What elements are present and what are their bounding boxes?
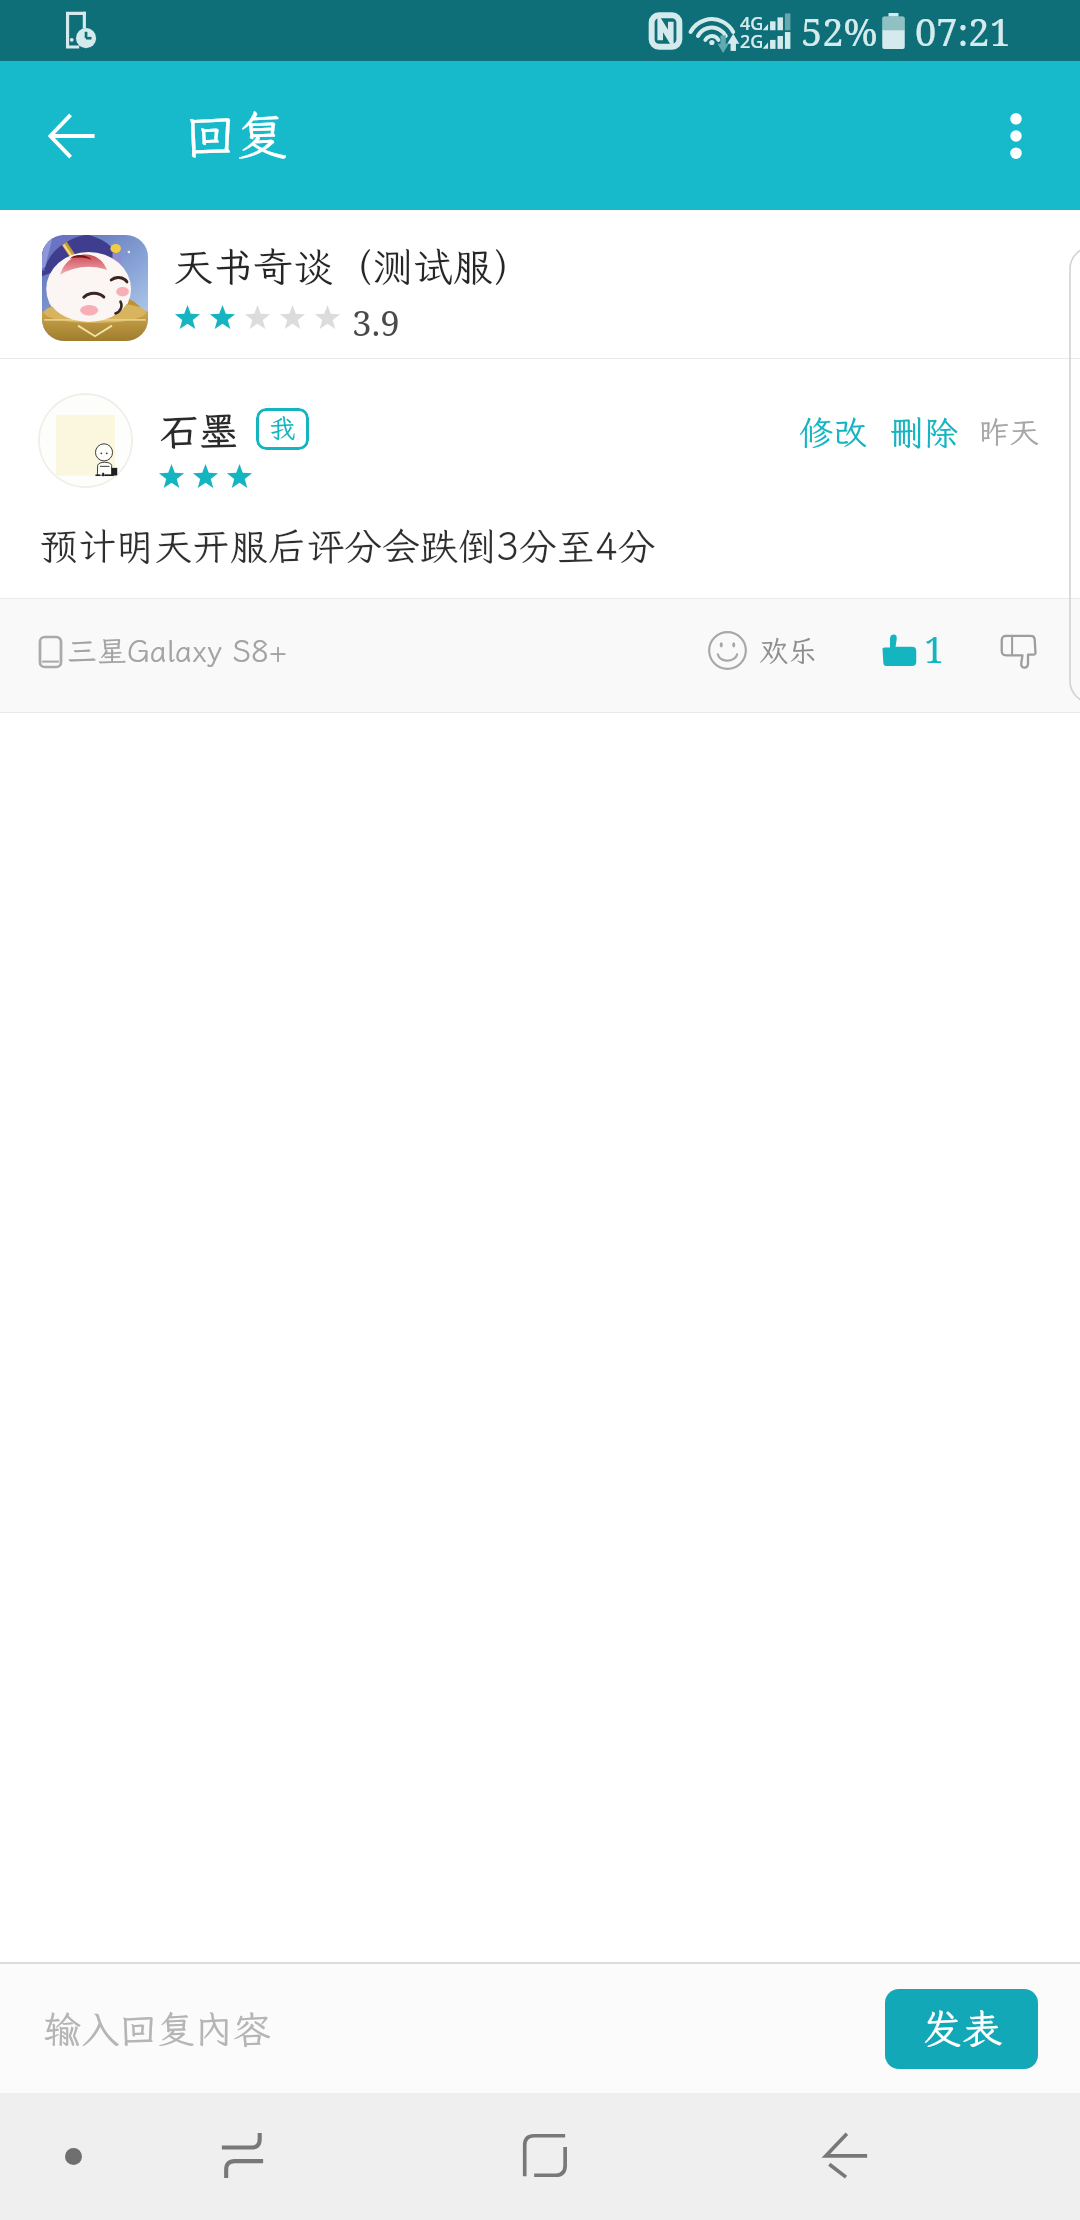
staticText: 回复 — [184, 100, 289, 168]
staticText: 我 — [269, 410, 296, 446]
staticText: 石墨 — [160, 405, 239, 456]
button[interactable]: 天书奇谈（测试服） — [0, 210, 1080, 358]
staticText: 昨天 — [979, 412, 1039, 452]
button[interactable]: Recents — [198, 2116, 286, 2194]
button[interactable]: 修改 — [793, 404, 873, 461]
staticText: 52% — [801, 5, 878, 57]
button[interactable]: 1 — [870, 614, 955, 687]
button[interactable]: More options — [970, 90, 1062, 182]
staticText: 天书奇谈（测试服） — [173, 240, 533, 293]
button[interactable]: Back — [26, 90, 118, 182]
staticText: 4G — [740, 11, 764, 36]
staticText: 3.9 — [352, 299, 400, 347]
staticText: 发表 — [922, 2002, 1002, 2055]
button[interactable]: Assistant — [28, 2111, 118, 2201]
staticText: 修改 — [799, 410, 867, 455]
button[interactable]: 欢乐 — [698, 619, 828, 682]
staticText: 输入回复内容 — [43, 2004, 272, 2054]
button[interactable]: 发表 — [885, 1989, 1038, 2069]
staticText: 1 — [924, 625, 945, 674]
staticText: 三星Galaxy S8+ — [67, 631, 287, 671]
button[interactable]: Home — [500, 2117, 588, 2193]
staticText: 07:21 — [915, 5, 1011, 57]
button[interactable]: 输入回复内容 — [0, 1964, 870, 2093]
button[interactable]: Dislike — [991, 623, 1048, 679]
staticText: 2G — [740, 29, 764, 54]
button[interactable]: 删除 — [884, 404, 964, 461]
staticText: 预计明天开服后评分会跌倒3分至4分 — [40, 521, 656, 571]
staticText: 删除 — [890, 410, 958, 455]
staticText: 欢乐 — [759, 631, 818, 669]
button[interactable]: Back — [802, 2116, 890, 2194]
